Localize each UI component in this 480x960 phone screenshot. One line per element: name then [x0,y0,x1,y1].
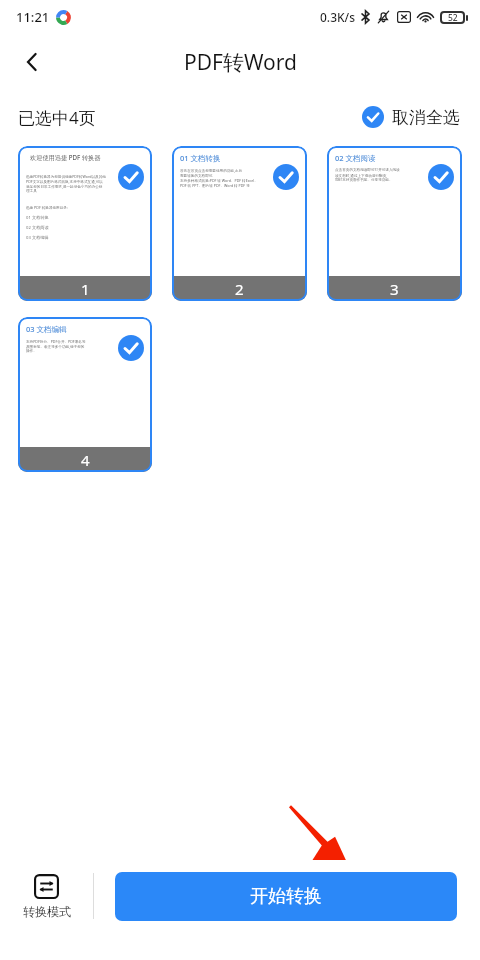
staticText: 首先在首页点击您需要使用的功能,之后 [180,168,243,173]
button[interactable]: 03 文档编辑 [18,317,152,472]
staticText: 已选中4页 [18,106,96,129]
staticText: 取消全选 [392,107,460,128]
staticText: 02 文档阅读 [26,225,49,231]
staticText: PDF文字以及图片格式转换,支持中格式互通,可以 [26,179,103,184]
staticText: 3 [390,279,399,299]
button[interactable]: 取消全选 [360,104,462,130]
staticText: 及图标笔、备注等多个功能,便于您的 [26,344,85,349]
staticText: 03 文档编辑 [26,235,49,241]
button[interactable]: 02 文档阅读 [327,146,462,301]
staticText: 需要转换的文档即可. [180,173,214,178]
staticText: 支持PDF拆分、PDF合并、PDF署名等 [26,339,86,344]
staticText: 欢迎使用迅捷 PDF 转换器 [30,153,140,161]
staticText: 迅捷PDF转换器为您提供便捷PDF转Word以及其他 [26,174,106,179]
staticText: 同时支持页面作书签、分享等功能。 [335,178,393,183]
staticText: 01 文档转换 [180,153,221,163]
staticText: 0.3K/s [320,9,356,25]
staticText: 理工具 [26,189,37,194]
staticText: 操作。 [26,349,37,354]
button[interactable]: Back [8,38,56,86]
staticText: 转换模式 [23,904,71,919]
staticText: 1 [81,279,90,299]
staticText: 01 文档转换 [26,215,49,221]
button[interactable]: 欢迎使用迅捷 PDF 转换器 [18,146,152,301]
staticText: PDF 转 PPT、图片转 PDF、Word 转 PDF 等 [180,183,250,188]
staticText: 点击首页的文档阅读即可打开可进入阅读 [335,168,400,173]
button[interactable]: 转换模式 [0,860,93,932]
staticText: 4 [81,450,90,470]
staticText: 支持多种格式转换:PDF 转 Word、PDF 转Excel、 [180,178,258,183]
staticText: 03 文档编辑 [26,324,67,334]
staticText: 02 文档阅读 [335,153,376,163]
staticText: PDF转Word [184,48,297,77]
staticText: 迅捷 PDF 转换器使用目录: [26,205,68,210]
staticText: 2 [235,279,244,299]
staticText: 满足您的日常工作需求,是一款绿色小巧的办公助 [26,184,103,189]
button[interactable]: 01 文档转换 [172,146,307,301]
button[interactable]: 开始转换 [115,872,457,921]
staticText: 52 [448,12,458,24]
staticText: 11:21 [16,8,50,26]
staticText: 读文档时,通过上下滑动进行翻页, [335,173,388,178]
staticText: 开始转换 [250,885,322,908]
